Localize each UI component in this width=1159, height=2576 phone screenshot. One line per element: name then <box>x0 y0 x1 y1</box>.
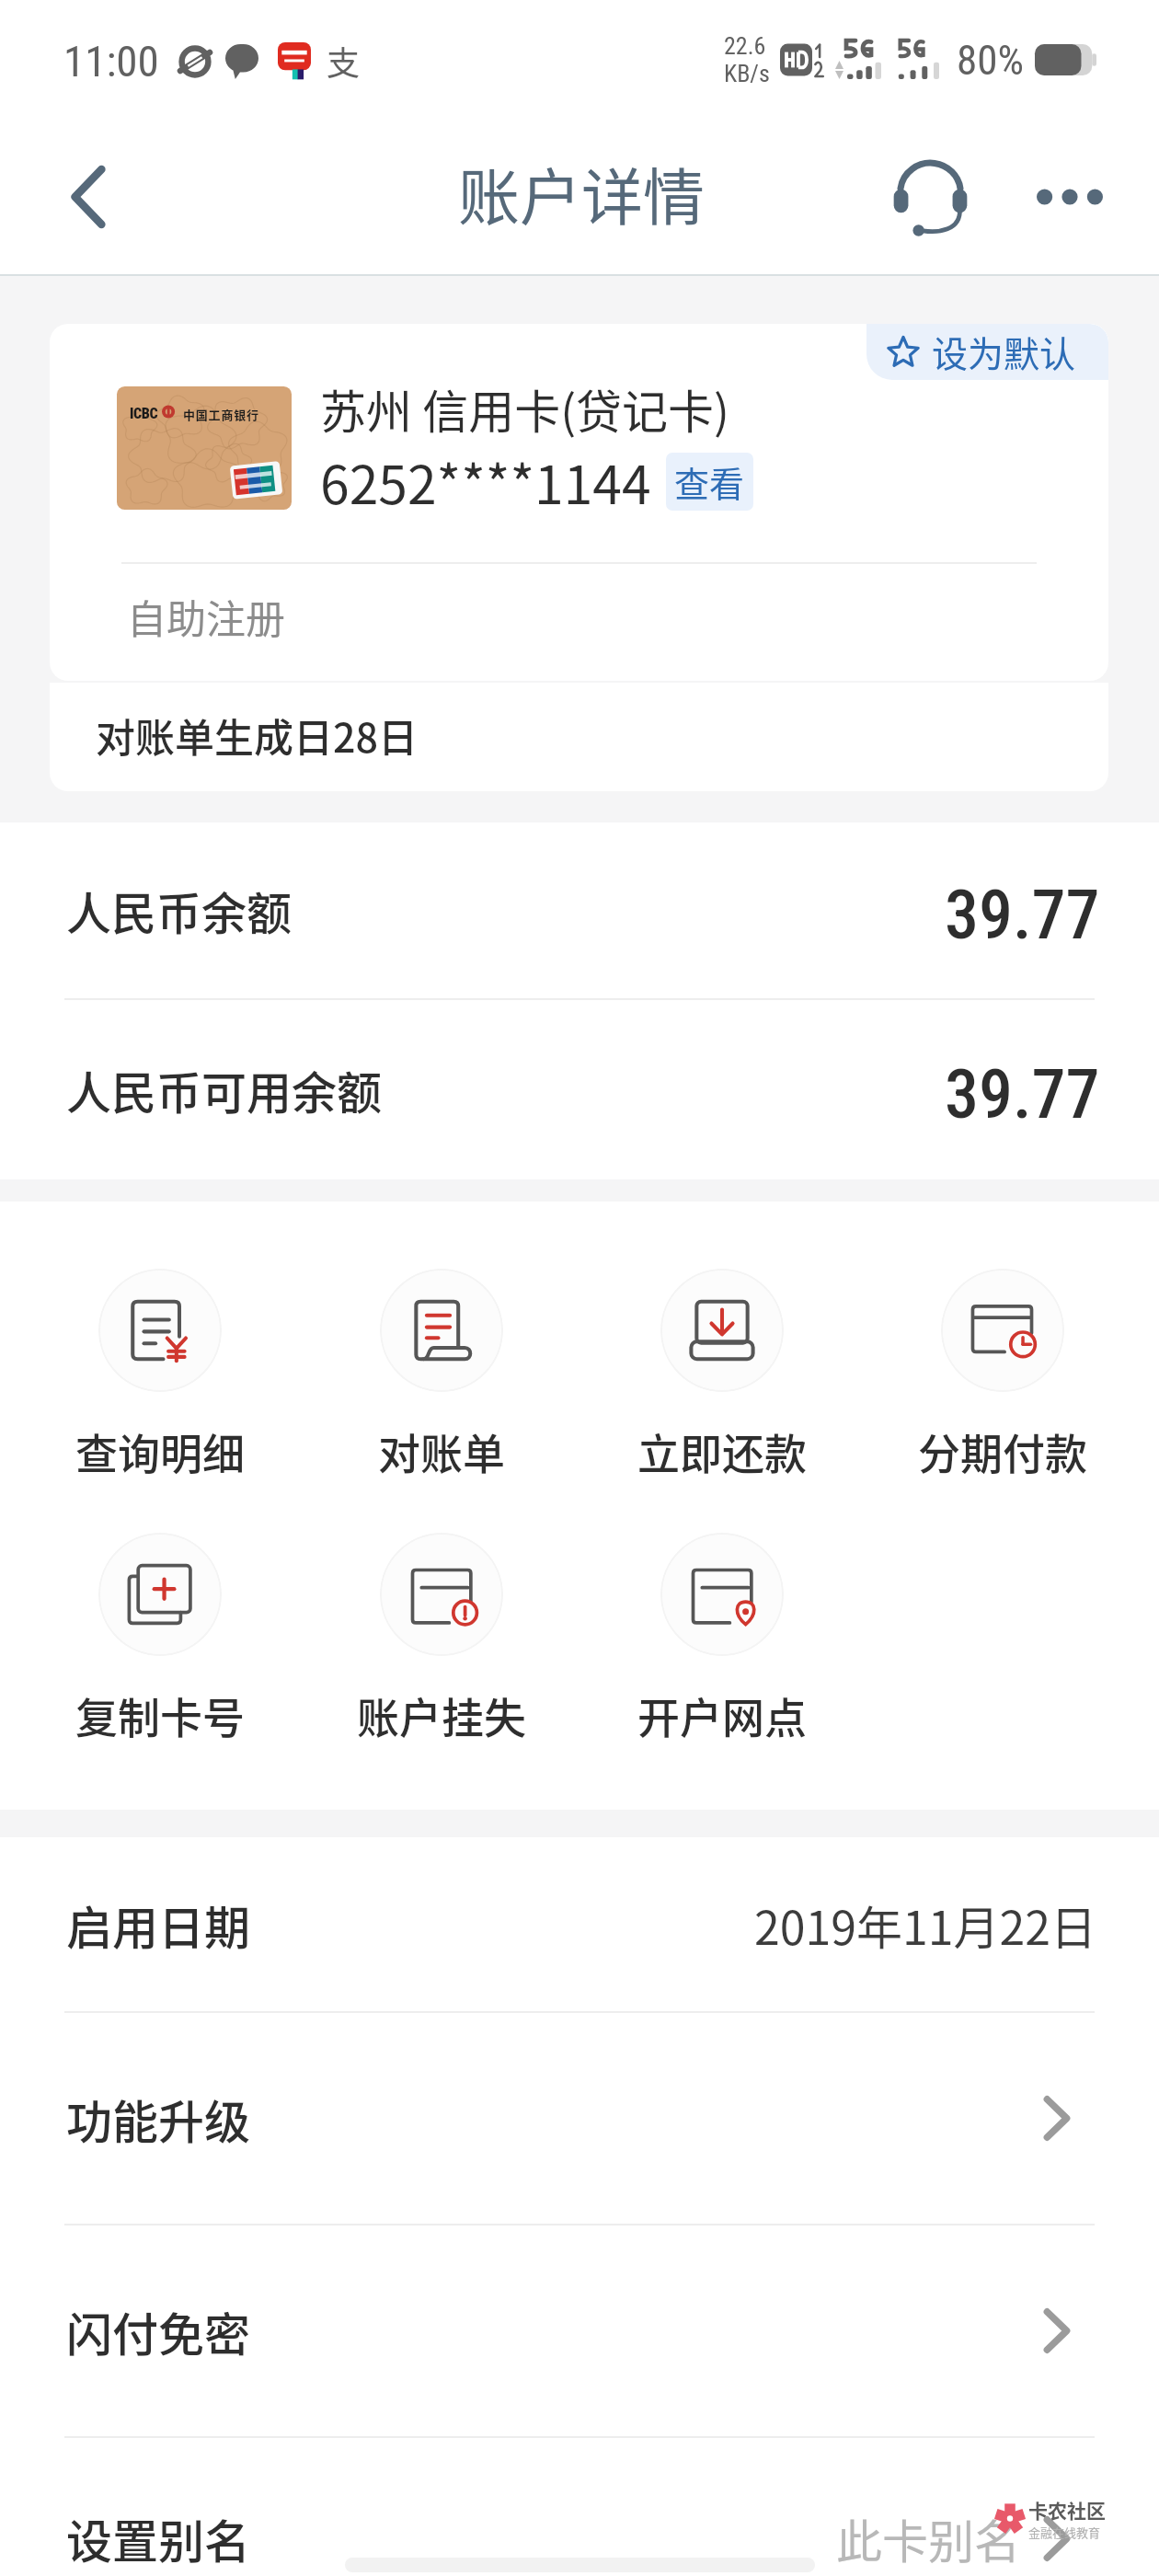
staticText: 此卡别名 <box>836 2505 1020 2571</box>
staticText: 账户挂失 <box>357 1685 526 1746</box>
staticText: 39.77 <box>945 1054 1100 1134</box>
staticText: 账户详情 <box>458 148 705 237</box>
staticText: 6252****1144 <box>320 443 651 520</box>
button[interactable]: Back <box>39 146 140 247</box>
staticText: KB/s <box>724 60 770 87</box>
staticText: 39.77 <box>945 875 1100 955</box>
staticText: 中国工商银行 <box>183 406 259 423</box>
staticText: 自助注册 <box>127 588 285 645</box>
staticText: 2019年11月22日 <box>754 1892 1096 1958</box>
staticText: 11:00 <box>63 36 159 86</box>
staticText: 金融在线教育 <box>1028 2524 1101 2541</box>
staticText: 苏州 信用卡(贷记卡) <box>320 375 729 442</box>
button[interactable]: 人民币可用余额 <box>0 1000 1159 1179</box>
staticText: 开户网点 <box>637 1685 807 1746</box>
button[interactable]: 人民币余额 <box>0 822 1159 998</box>
staticText: 支 <box>327 37 361 85</box>
staticText: 复制卡号 <box>75 1685 245 1746</box>
staticText: 人民币余额 <box>66 878 293 943</box>
staticText: 立即还款 <box>637 1420 807 1482</box>
button[interactable]: 开户网点 <box>581 1533 862 1746</box>
button[interactable]: 账户挂失 <box>301 1533 581 1746</box>
staticText: 查询明细 <box>75 1420 245 1482</box>
button[interactable]: 查询明细 <box>19 1269 301 1482</box>
staticText: 闪付免密 <box>66 2298 250 2364</box>
button[interactable]: 功能升级 <box>0 2013 1159 2224</box>
staticText: 卡农社区 <box>1028 2496 1106 2524</box>
button[interactable]: ICBC <box>50 324 1108 681</box>
button[interactable]: 启用日期 <box>0 1837 1159 2011</box>
button[interactable]: 闪付免密 <box>0 2225 1159 2436</box>
button[interactable]: 对账单生成日28日 <box>50 683 1108 791</box>
staticText: 对账单 <box>378 1420 505 1482</box>
staticText: ICBC <box>130 405 158 422</box>
staticText: 22.6 <box>724 32 766 60</box>
staticText: 设为默认 <box>932 326 1076 377</box>
button[interactable]: More options <box>1019 146 1120 247</box>
staticText: 分期付款 <box>918 1420 1087 1482</box>
staticText: 设置别名 <box>66 2505 250 2571</box>
button[interactable]: Customer service <box>879 146 981 247</box>
button[interactable]: 查看 <box>666 453 753 511</box>
button[interactable]: 对账单 <box>301 1269 581 1482</box>
button[interactable]: 设为默认 <box>866 324 1108 380</box>
staticText: 人民币可用余额 <box>66 1057 383 1122</box>
button[interactable]: 设置别名 <box>0 2438 1159 2576</box>
staticText: 查看 <box>674 456 745 507</box>
staticText: 功能升级 <box>66 2086 250 2152</box>
button[interactable]: 分期付款 <box>862 1269 1142 1482</box>
button[interactable]: 立即还款 <box>581 1269 862 1482</box>
button[interactable]: 复制卡号 <box>19 1533 301 1746</box>
staticText: 80% <box>957 36 1024 85</box>
staticText: 对账单生成日28日 <box>96 707 419 764</box>
staticText: 启用日期 <box>66 1892 250 1958</box>
